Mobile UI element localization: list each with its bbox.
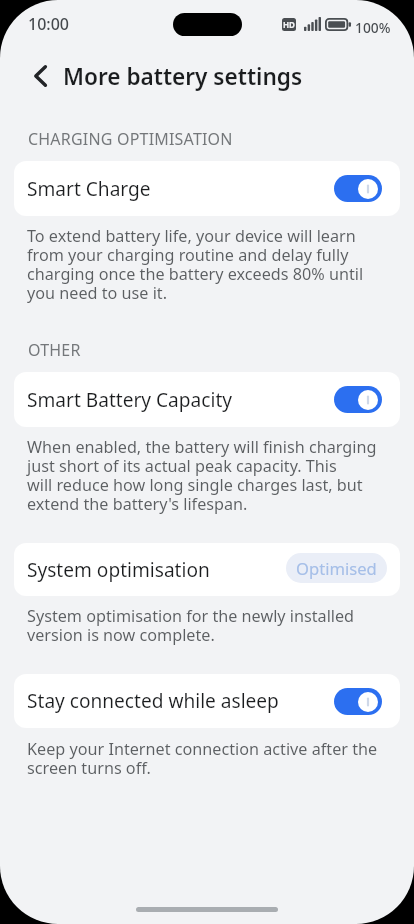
button[interactable]: System optimisation: [14, 543, 400, 596]
button[interactable]: Back: [23, 58, 59, 94]
staticText: Stay connected while asleep: [27, 688, 279, 714]
staticText: HD: [283, 19, 295, 30]
button[interactable]: Optimised: [286, 553, 387, 583]
button[interactable]: Toggle: [334, 175, 382, 202]
staticText: To extend battery life, your device will…: [27, 225, 364, 303]
button[interactable]: Toggle: [334, 386, 382, 413]
staticText: System optimisation for the newly instal…: [27, 605, 355, 645]
staticText: Smart Battery Capacity: [27, 387, 233, 413]
staticText: Optimised: [296, 557, 377, 580]
staticText: CHARGING OPTIMISATION: [28, 128, 233, 150]
button[interactable]: Toggle: [334, 688, 382, 715]
button[interactable]: Stay connected while asleep: [14, 674, 400, 728]
button[interactable]: Smart Battery Capacity: [14, 372, 400, 427]
staticText: Keep your Internet connection active aft…: [27, 738, 378, 778]
button[interactable]: Smart Charge: [14, 161, 400, 216]
staticText: Smart Charge: [27, 176, 151, 202]
staticText: 10:00: [28, 13, 69, 35]
staticText: When enabled, the battery will finish ch…: [27, 436, 377, 514]
staticText: More battery settings: [63, 61, 303, 92]
staticText: 100%: [355, 18, 391, 37]
staticText: OTHER: [28, 339, 81, 361]
staticText: System optimisation: [27, 557, 210, 583]
